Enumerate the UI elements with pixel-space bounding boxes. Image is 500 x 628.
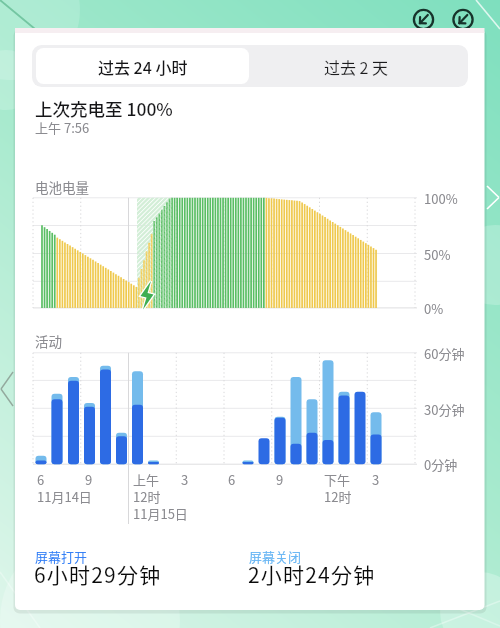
staticText: 9 xyxy=(85,470,93,489)
button[interactable] xyxy=(413,9,434,30)
staticText: 50% xyxy=(424,245,451,264)
button[interactable]: 过去 2 天 xyxy=(248,48,464,84)
staticText: 电池电量 xyxy=(35,177,89,197)
staticText: 30分钟 xyxy=(424,400,465,419)
staticText: 11月14日 xyxy=(37,487,92,506)
staticText: 3 xyxy=(181,470,189,489)
staticText: 过去 24 小时 xyxy=(98,55,188,78)
staticText: 3 xyxy=(372,470,380,489)
staticText: 屏幕打开 xyxy=(35,547,88,566)
staticText: 6 xyxy=(37,470,45,489)
staticText: 活动 xyxy=(35,331,62,351)
staticText: 上次充电至 100% xyxy=(35,96,173,121)
staticText: 下午 xyxy=(324,470,351,489)
staticText: 上午 7:56 xyxy=(35,118,90,137)
staticText: 上午 xyxy=(133,470,160,489)
button[interactable] xyxy=(485,184,500,212)
staticText: 0分钟 xyxy=(424,455,458,474)
staticText: 9 xyxy=(276,470,284,489)
button[interactable]: 过去 24 小时 xyxy=(36,48,249,84)
staticText: 12时 xyxy=(324,487,352,506)
button[interactable] xyxy=(452,9,473,30)
staticText: 2小时24分钟 xyxy=(248,559,376,589)
staticText: 60分钟 xyxy=(424,344,465,363)
staticText: 过去 2 天 xyxy=(324,55,389,78)
staticText: 6 xyxy=(228,470,236,489)
staticText: 6小时29分钟 xyxy=(34,559,162,589)
staticText: 0% xyxy=(424,299,444,318)
button[interactable] xyxy=(0,370,15,410)
staticText: 100% xyxy=(424,189,458,208)
staticText: 12时 xyxy=(133,487,161,506)
staticText: 11月15日 xyxy=(133,504,188,523)
staticText: 屏幕关闭 xyxy=(249,547,302,566)
